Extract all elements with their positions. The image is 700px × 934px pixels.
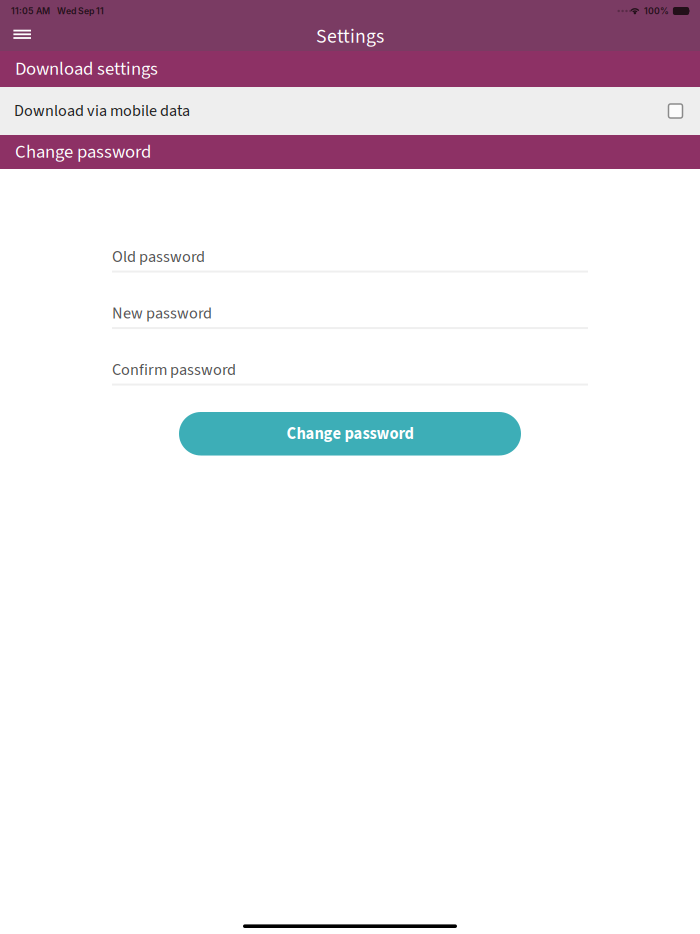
staticText: 11:05 AM	[11, 6, 50, 16]
button[interactable]: Confirm password	[112, 352, 588, 384]
staticText: Old password	[112, 245, 205, 269]
staticText: 100%	[644, 6, 669, 16]
staticText: Confirm password	[112, 358, 236, 382]
staticText: Change password	[15, 139, 151, 165]
staticText: Settings	[316, 22, 384, 50]
staticText: Change password	[286, 422, 413, 445]
staticText: Download via mobile data	[14, 99, 190, 122]
button[interactable]: Menu	[0, 23, 45, 50]
staticText: New password	[112, 302, 212, 325]
button[interactable]: New password	[112, 295, 588, 327]
staticText: Wed Sep 11	[57, 6, 104, 16]
button[interactable]: Old password	[112, 239, 588, 271]
button[interactable]: Download via mobile data	[0, 87, 700, 135]
staticText: Download settings	[15, 56, 158, 82]
button[interactable]: Change password	[179, 412, 521, 455]
